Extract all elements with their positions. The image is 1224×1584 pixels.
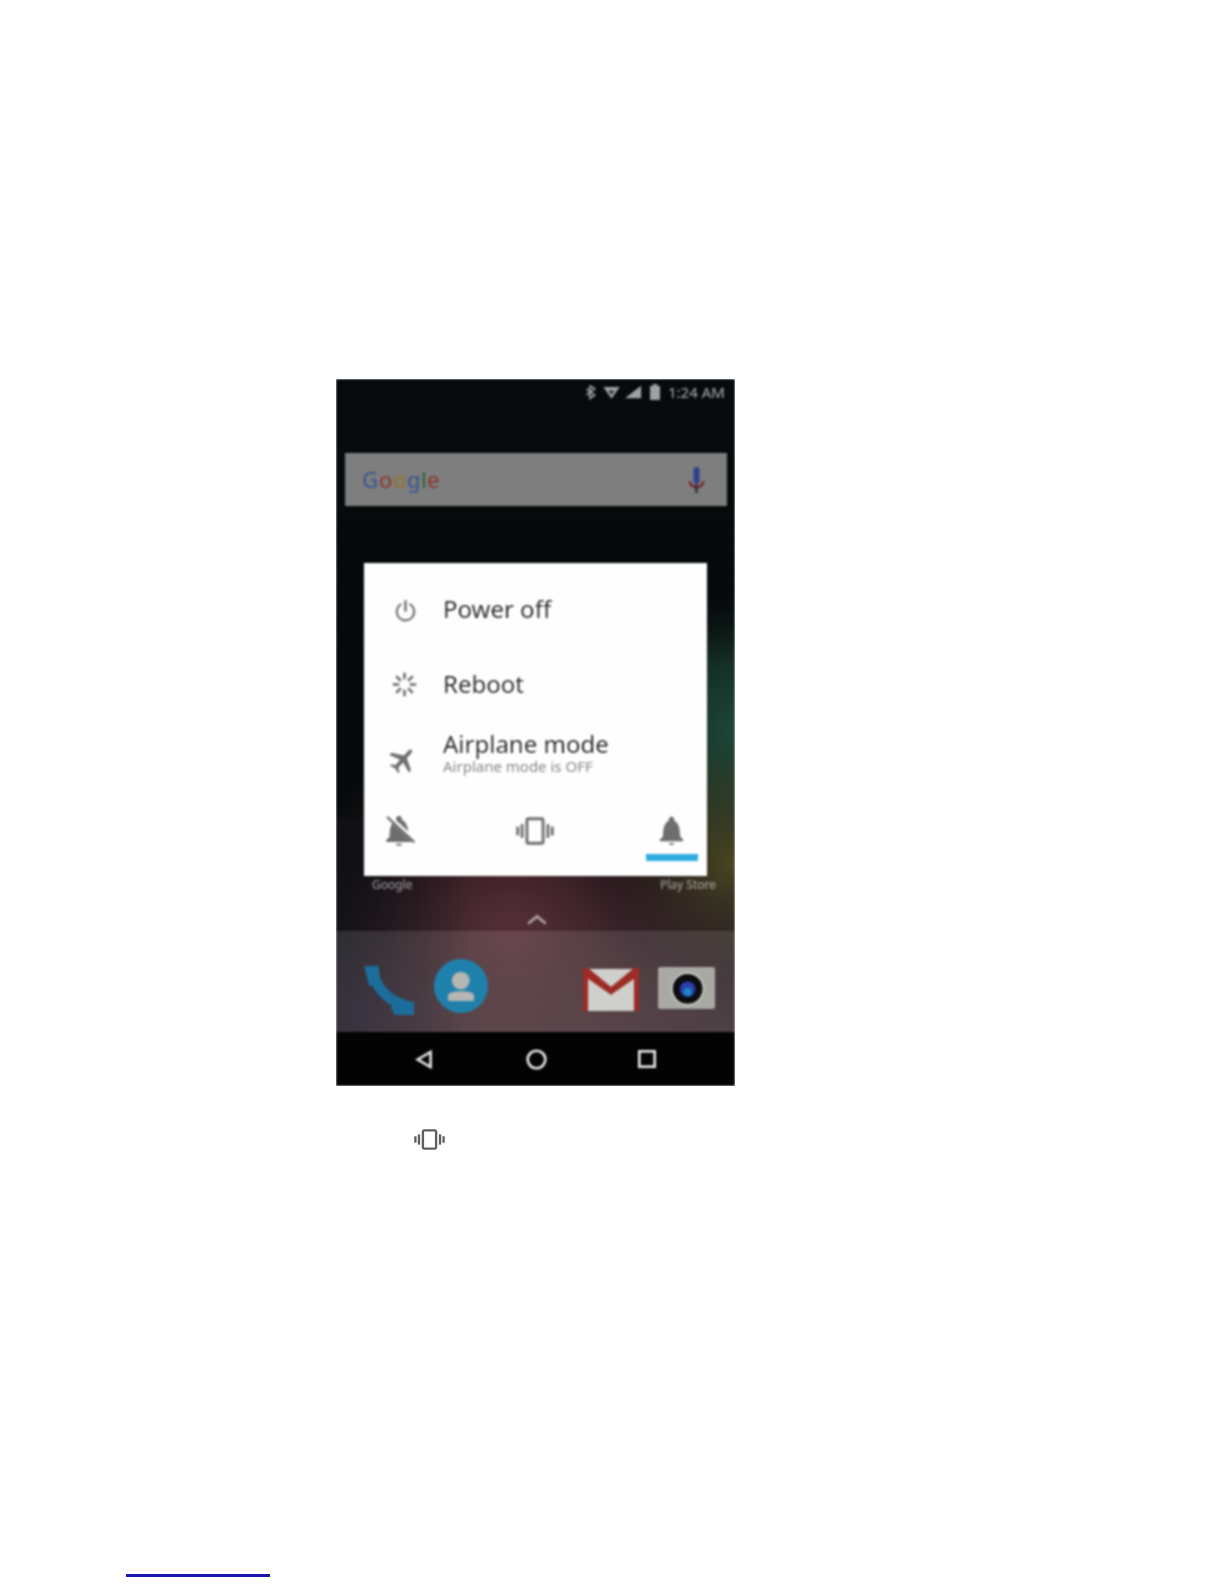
staticText: l — [421, 464, 427, 494]
button[interactable]: Silent mode — [383, 815, 415, 848]
button[interactable]: Camera — [658, 967, 715, 1009]
staticText: Airplane mode — [443, 727, 609, 760]
button[interactable]: Gmail — [583, 968, 639, 1011]
button[interactable]: Airplane mode — [364, 728, 707, 786]
staticText: Google — [372, 876, 413, 892]
button[interactable]: Vibrate mode — [516, 813, 554, 849]
staticText: Airplane mode is OFF — [443, 756, 593, 776]
staticText: G — [362, 464, 379, 494]
button[interactable]: Contacts — [434, 959, 488, 1013]
staticText: o — [393, 464, 407, 494]
staticText: Reboot — [443, 667, 524, 700]
button[interactable]: Voice search — [680, 461, 712, 499]
button[interactable]: G — [345, 453, 727, 506]
button[interactable]: Reboot — [364, 661, 707, 711]
staticText: Power off — [443, 592, 552, 625]
button[interactable]: Home — [513, 1036, 559, 1082]
button[interactable]: Power off — [364, 585, 707, 635]
staticText: 1:24 AM — [668, 382, 725, 402]
button[interactable]: Recent apps — [624, 1036, 670, 1082]
button[interactable]: Back — [401, 1036, 447, 1082]
staticText: o — [379, 464, 393, 494]
staticText: Play Store — [660, 876, 716, 892]
button[interactable]: Ring mode — [657, 816, 686, 847]
staticText: g — [407, 464, 421, 494]
button[interactable]: Phone — [361, 963, 414, 1016]
staticText: e — [427, 464, 440, 494]
